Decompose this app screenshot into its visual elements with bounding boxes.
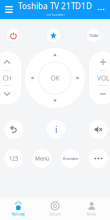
button[interactable]: Power bbox=[7, 29, 20, 42]
button[interactable]: More bbox=[89, 149, 108, 168]
button[interactable]: Back bbox=[4, 120, 23, 139]
staticText: Remote bbox=[12, 211, 25, 216]
button[interactable]: Menu bbox=[0, 0, 18, 19]
button[interactable]: Exit bbox=[61, 149, 80, 168]
staticText: Toshiba TV 21TD1D bbox=[18, 1, 92, 11]
button[interactable]: Left bbox=[27, 73, 36, 82]
button[interactable]: VOL down bbox=[89, 86, 110, 102]
button[interactable]: Up bbox=[50, 50, 59, 59]
staticText: i bbox=[55, 123, 57, 136]
button[interactable]: Mehr bbox=[73, 198, 110, 220]
button[interactable]: TV AV input bbox=[87, 29, 100, 42]
button[interactable]: Info bbox=[46, 120, 65, 139]
staticText: verbunden bbox=[46, 12, 64, 17]
button[interactable]: Mute bbox=[89, 120, 108, 139]
button[interactable]: VOL up bbox=[89, 54, 110, 70]
button[interactable]: Right bbox=[74, 73, 83, 82]
button[interactable]: Down bbox=[50, 97, 59, 106]
button[interactable]: Menu bbox=[32, 149, 51, 168]
button[interactable]: Smart bbox=[37, 198, 73, 220]
staticText: Menü bbox=[35, 155, 49, 162]
button[interactable]: CH down bbox=[0, 86, 21, 102]
button[interactable]: OK bbox=[41, 64, 69, 92]
staticText: CH bbox=[2, 74, 11, 82]
staticText: VOL bbox=[97, 74, 109, 82]
staticText: Smart bbox=[49, 211, 60, 216]
staticText: Beenden bbox=[63, 156, 78, 161]
button[interactable]: CH up bbox=[0, 54, 21, 70]
staticText: Mehr bbox=[87, 211, 97, 216]
staticText: OK bbox=[50, 74, 59, 82]
button[interactable]: Favourites bbox=[47, 29, 60, 42]
button[interactable]: Remote bbox=[0, 198, 37, 220]
staticText: TV/AV bbox=[89, 33, 98, 38]
staticText: 123 bbox=[9, 155, 18, 162]
button[interactable]: More options bbox=[92, 0, 110, 19]
button[interactable]: Number pad bbox=[4, 149, 23, 168]
